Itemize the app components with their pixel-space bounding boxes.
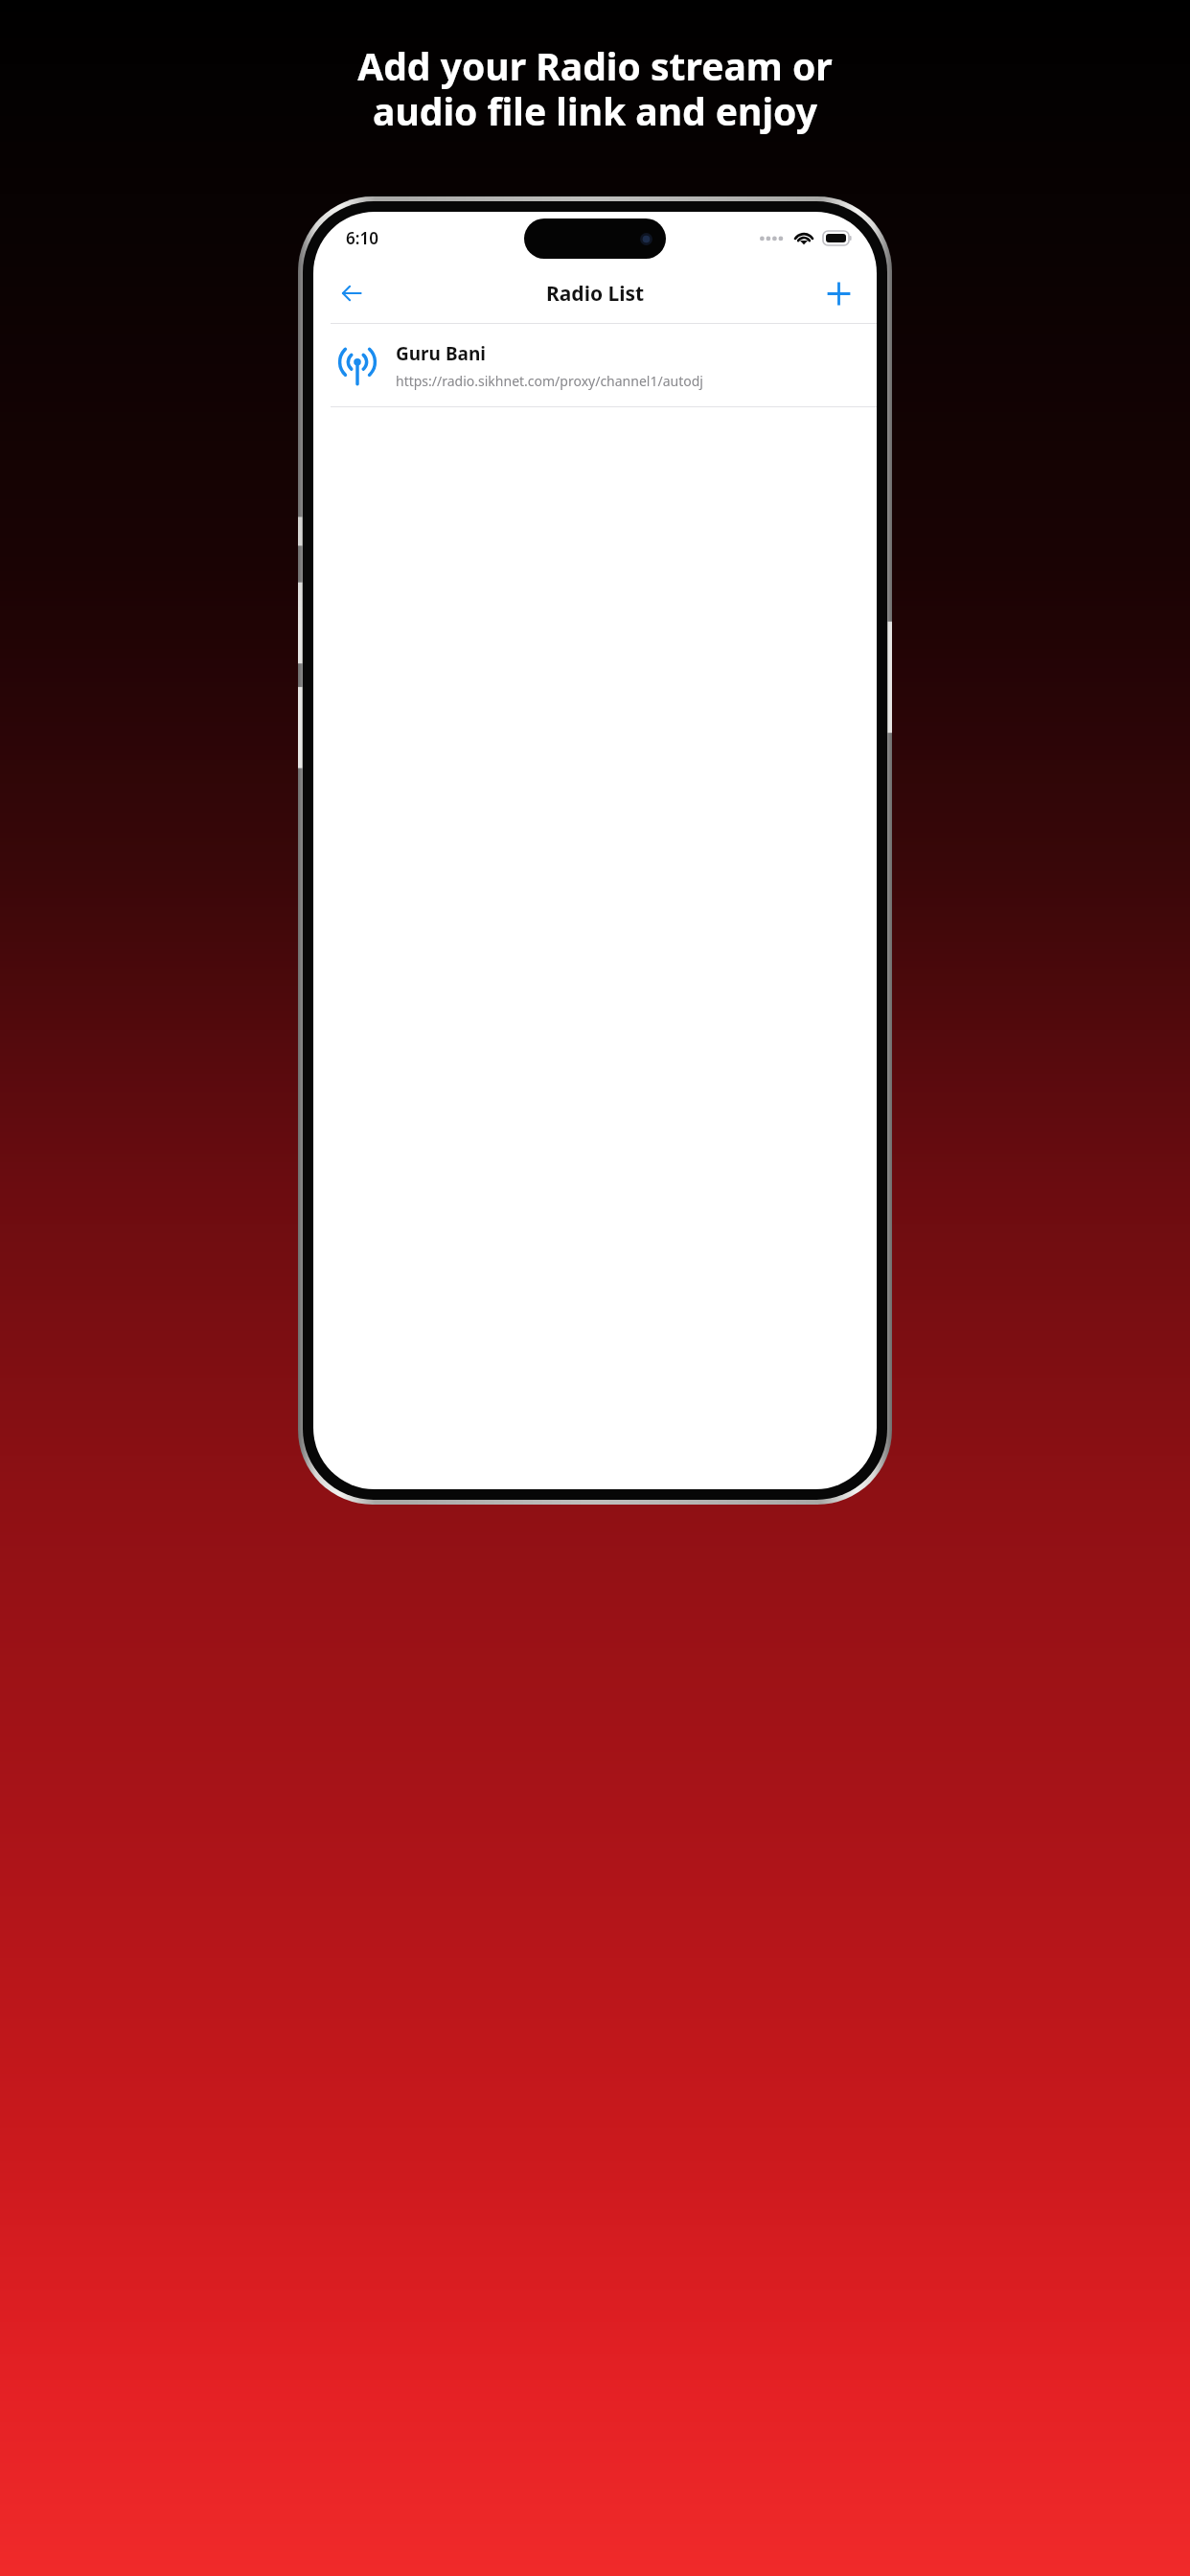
staticText: Guru Bani: [396, 341, 486, 366]
button[interactable]: Guru Bani: [313, 324, 877, 406]
staticText: 6:10: [346, 227, 378, 249]
staticText: Add your Radio stream or audio file link…: [357, 40, 833, 136]
button[interactable]: Add radio stream: [815, 270, 861, 316]
staticText: Radio List: [546, 280, 645, 308]
staticText: https://radio.sikhnet.com/proxy/channel1…: [396, 372, 703, 390]
button[interactable]: Back: [329, 270, 375, 316]
